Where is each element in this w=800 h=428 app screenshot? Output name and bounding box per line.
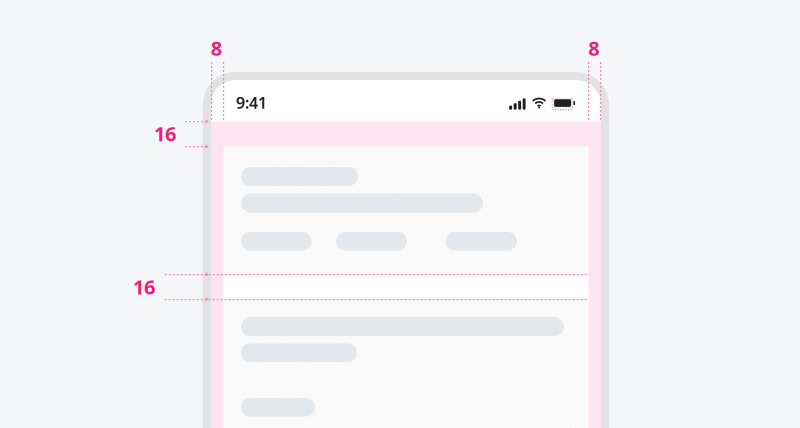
staticText: 8 — [588, 35, 599, 61]
button[interactable]: 9:41 — [235, 93, 269, 111]
button[interactable]: Third filter — [445, 232, 517, 250]
staticText: 16 — [133, 273, 155, 300]
staticText: 16 — [154, 120, 176, 147]
staticText: 9:41 — [236, 92, 267, 113]
button[interactable]: Action — [241, 398, 315, 416]
button[interactable]: Second filter — [336, 232, 407, 250]
staticText: 8 — [211, 35, 222, 61]
button[interactable]: First filter — [241, 232, 311, 250]
